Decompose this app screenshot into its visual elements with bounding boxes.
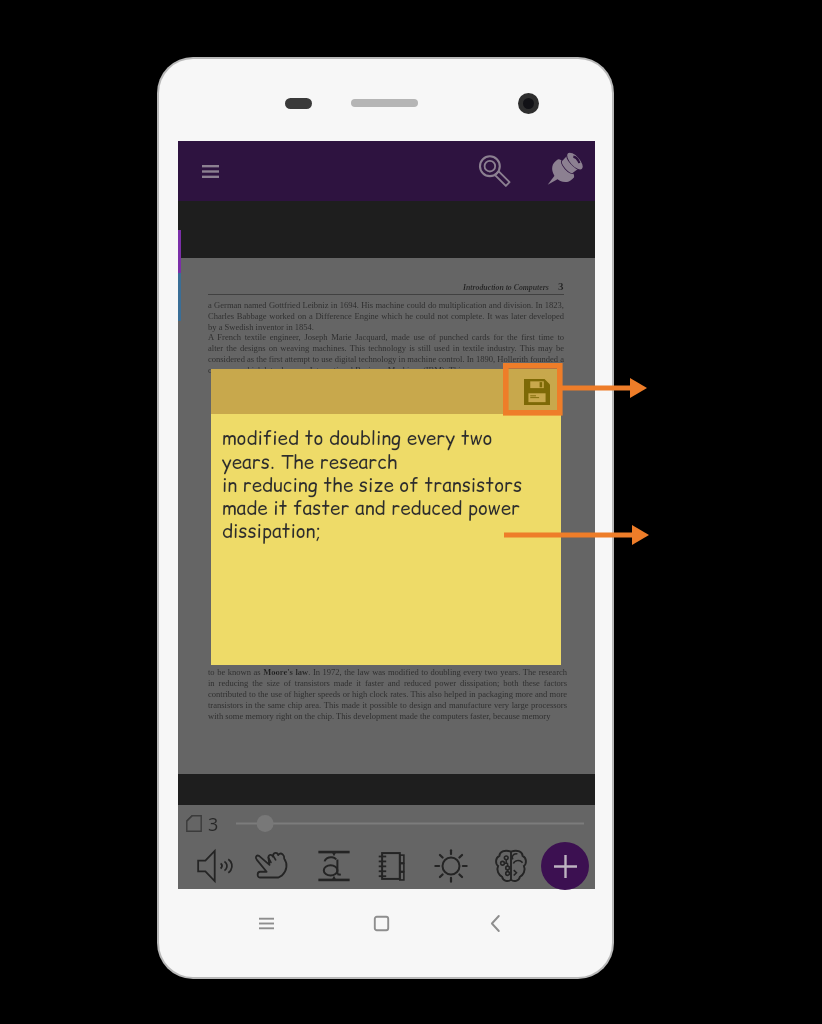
button[interactable]: Save note: [520, 375, 554, 409]
staticText: Introduction to Computers: [463, 283, 549, 292]
button[interactable]: Touch mode: [249, 843, 295, 889]
staticText: a German named Gottfried Leibniz in 1694…: [208, 300, 564, 332]
staticText: modified to doubling every two years. Th…: [222, 425, 523, 544]
button[interactable]: Brightness: [428, 843, 474, 889]
button[interactable]: Recents: [246, 903, 286, 943]
staticText: 3: [208, 812, 219, 837]
button[interactable]: Font size: [311, 843, 357, 889]
button[interactable]: Search: [474, 151, 514, 191]
button[interactable]: Home: [361, 903, 401, 943]
button[interactable]: Pin page: [539, 147, 587, 195]
button[interactable]: Notebook: [370, 843, 416, 889]
staticText: to be known as Moore's law. In 1972, the…: [208, 667, 567, 721]
button[interactable]: Add note: [541, 842, 589, 890]
button[interactable]: Page slider: [232, 813, 588, 834]
button[interactable]: Open navigation menu: [192, 153, 228, 189]
button[interactable]: Read aloud: [191, 843, 237, 889]
button[interactable]: Back: [475, 903, 515, 943]
staticText: 3: [558, 280, 564, 292]
button[interactable]: Smart insights: [488, 843, 534, 889]
staticText: A French textile engineer, Joseph Marie …: [208, 332, 564, 375]
